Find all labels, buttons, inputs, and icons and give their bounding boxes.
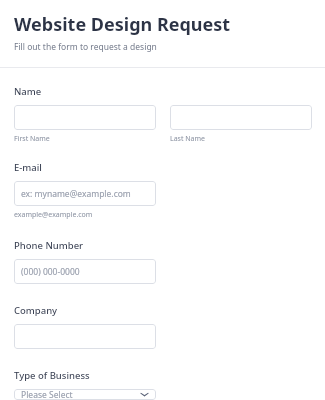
button[interactable]: Phone Number xyxy=(14,259,156,284)
staticText: Last Name xyxy=(170,134,206,144)
staticText: ex: myname@example.com xyxy=(21,188,131,200)
button[interactable]: E-mail xyxy=(14,181,156,206)
staticText: Website Design Request xyxy=(14,12,231,37)
staticText: Type of Business xyxy=(14,369,90,382)
staticText: E-mail xyxy=(14,161,42,174)
button[interactable]: Type of Business xyxy=(14,389,156,400)
staticText: Company xyxy=(14,304,58,317)
staticText: Phone Number xyxy=(14,239,84,252)
staticText: First Name xyxy=(14,134,50,144)
staticText: Fill out the form to request a design xyxy=(14,41,157,53)
staticText: Please Select xyxy=(21,389,73,400)
button[interactable]: Last Name xyxy=(170,105,312,130)
staticText: example@example.com xyxy=(14,210,93,220)
button[interactable]: Company xyxy=(14,324,156,349)
staticText: Name xyxy=(14,85,42,98)
staticText: (000) 000-0000 xyxy=(21,266,80,278)
button[interactable]: First Name xyxy=(14,105,156,130)
